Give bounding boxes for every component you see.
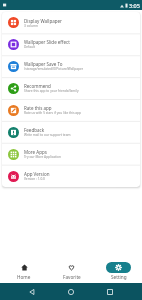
staticText: Wallpaper Save To [24,61,63,67]
staticText: Write mail to our support team [24,133,71,137]
button[interactable]: Rate this app [2,99,140,121]
staticText: Recommend [24,83,51,89]
button[interactable]: More Apps [2,143,140,165]
staticText: Wallpaper Slide effect [24,39,70,45]
button[interactable]: Recents [103,285,117,299]
staticText: App Version [24,171,50,177]
button[interactable]: Home [0,259,48,283]
staticText: Home [17,274,31,280]
staticText: Feedback [24,127,45,133]
staticText: Version : 1.0.0 [24,177,45,181]
staticText: Display Wallpaper [24,18,62,24]
staticText: 3 column [24,24,38,28]
staticText: Favorite [63,274,81,280]
staticText: /storage/emulated/0/Picture/Wallpaper [24,67,84,71]
button[interactable]: Back [25,285,39,299]
button[interactable]: Recommend [2,77,140,99]
staticText: 3:05 [129,2,140,9]
button[interactable]: Setting [95,259,142,283]
staticText: More Apps [24,149,47,155]
button[interactable]: Wallpaper Slide effect [2,33,140,55]
staticText: Rate us with 5 stars if you like this ap… [24,111,82,115]
staticText: Default [24,45,35,49]
staticText: Rate this app [24,105,52,111]
button[interactable]: App Version [2,165,140,187]
staticText: Try our More Application [24,155,61,159]
button[interactable]: Feedback [2,121,140,143]
button[interactable]: Favorite [48,259,95,283]
button[interactable]: Display Wallpaper [2,12,140,33]
button[interactable]: Wallpaper Save To [2,55,140,77]
button[interactable]: Home [64,285,78,299]
staticText: Setting [111,274,127,280]
staticText: Share this app to your friends/family [24,89,79,93]
